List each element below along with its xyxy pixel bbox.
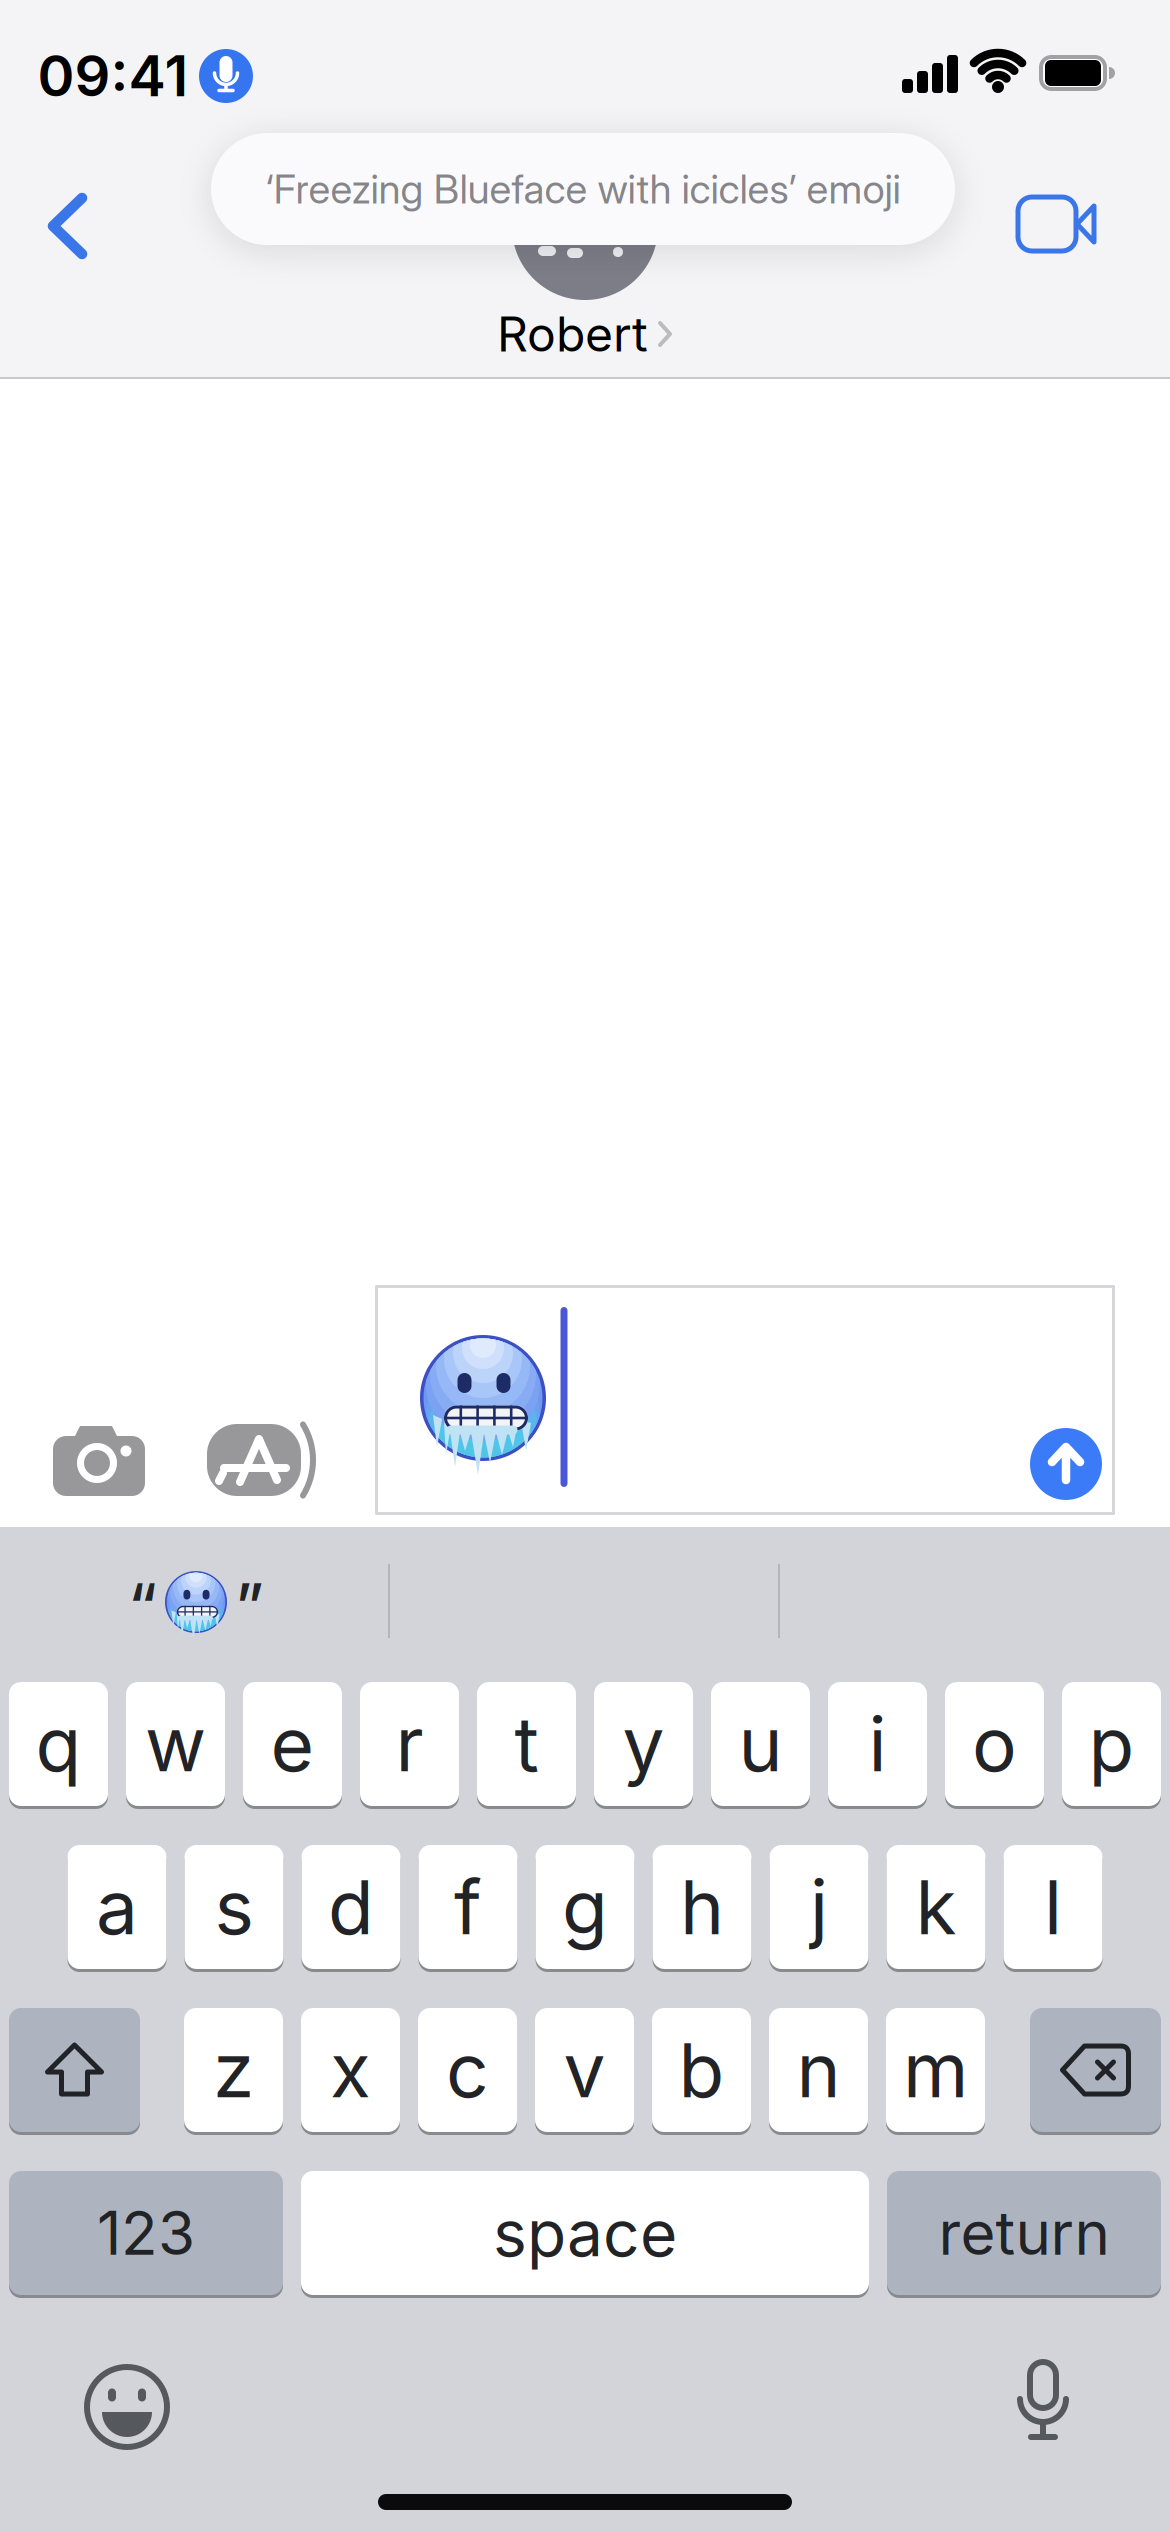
button[interactable]: Robert, contact details xyxy=(497,306,673,362)
staticText: k xyxy=(915,1863,956,1951)
button[interactable]: iMessage apps xyxy=(207,1424,319,1496)
button[interactable]: Dictate xyxy=(1011,2359,1075,2441)
button[interactable]: q xyxy=(9,1680,108,1807)
staticText: j xyxy=(810,1863,828,1951)
staticText: p xyxy=(1088,1700,1134,1788)
button[interactable]: e xyxy=(243,1680,342,1807)
staticText: “ xyxy=(128,1570,157,1642)
staticText: t xyxy=(514,1700,538,1788)
button[interactable]: Send xyxy=(1030,1428,1102,1500)
button[interactable]: f xyxy=(418,1843,517,1970)
staticText: c xyxy=(446,2026,489,2114)
button[interactable]: s xyxy=(184,1843,283,1970)
button[interactable]: u xyxy=(711,1680,810,1807)
staticText: space xyxy=(493,2195,677,2271)
staticText: w xyxy=(145,1700,206,1788)
button[interactable]: Back xyxy=(48,195,88,257)
staticText: d xyxy=(328,1863,374,1951)
staticText: 123 xyxy=(97,2198,195,2268)
button[interactable]: o xyxy=(945,1680,1044,1807)
button[interactable]: m xyxy=(886,2006,985,2133)
staticText: i xyxy=(868,1700,886,1788)
button[interactable]: FaceTime xyxy=(1014,196,1100,252)
button[interactable]: g xyxy=(535,1843,634,1970)
button[interactable]: b xyxy=(652,2006,751,2133)
staticText: ” xyxy=(235,1570,264,1642)
staticText: ‘Freezing Blueface with icicles’ emoji xyxy=(265,165,900,213)
button[interactable]: Emoji xyxy=(81,2361,173,2453)
staticText: 09:41 xyxy=(37,43,188,109)
button[interactable]: Shift xyxy=(9,2006,140,2133)
button[interactable]: d xyxy=(301,1843,400,1970)
button[interactable]: z xyxy=(184,2006,283,2133)
button[interactable]: 123 xyxy=(9,2169,283,2296)
button[interactable]: return xyxy=(887,2169,1161,2296)
staticText: x xyxy=(330,2026,371,2114)
button[interactable]: Camera xyxy=(53,1424,145,1496)
button[interactable]: a xyxy=(67,1843,166,1970)
button[interactable]: t xyxy=(477,1680,576,1807)
button[interactable]: Delete xyxy=(1030,2006,1161,2133)
staticText: a xyxy=(96,1863,138,1951)
staticText: q xyxy=(35,1700,81,1788)
staticText: h xyxy=(680,1863,724,1951)
staticText: e xyxy=(270,1700,314,1788)
button[interactable]: h xyxy=(652,1843,751,1970)
button[interactable]: v xyxy=(535,2006,634,2133)
staticText: n xyxy=(796,2026,840,2114)
staticText: z xyxy=(213,2026,254,2114)
staticText: y xyxy=(622,1700,664,1788)
staticText: m xyxy=(903,2026,968,2114)
button[interactable]: Robert, contact photo xyxy=(512,154,658,300)
staticText: b xyxy=(678,2026,724,2114)
button[interactable]: n xyxy=(769,2006,868,2133)
button[interactable]: k xyxy=(886,1843,985,1970)
button[interactable]: p xyxy=(1062,1680,1161,1807)
staticText: o xyxy=(972,1700,1017,1788)
staticText: s xyxy=(214,1863,253,1951)
staticText: v xyxy=(563,2026,605,2114)
button[interactable]: c xyxy=(418,2006,517,2133)
staticText: l xyxy=(1044,1863,1062,1951)
staticText: r xyxy=(395,1700,423,1788)
button[interactable]: j xyxy=(769,1843,868,1970)
staticText: g xyxy=(562,1863,608,1951)
staticText: return xyxy=(938,2198,1109,2268)
staticText: f xyxy=(454,1863,482,1951)
staticText: Robert xyxy=(497,306,648,362)
button[interactable]: l xyxy=(1003,1843,1102,1970)
button[interactable]: x xyxy=(301,2006,400,2133)
staticText: u xyxy=(738,1700,782,1788)
button[interactable]: Freezing face emoji suggestion xyxy=(128,1564,264,1636)
button[interactable]: space xyxy=(301,2169,869,2296)
button[interactable]: r xyxy=(360,1680,459,1807)
button[interactable]: i xyxy=(828,1680,927,1807)
button[interactable]: y xyxy=(594,1680,693,1807)
button[interactable]: w xyxy=(126,1680,225,1807)
